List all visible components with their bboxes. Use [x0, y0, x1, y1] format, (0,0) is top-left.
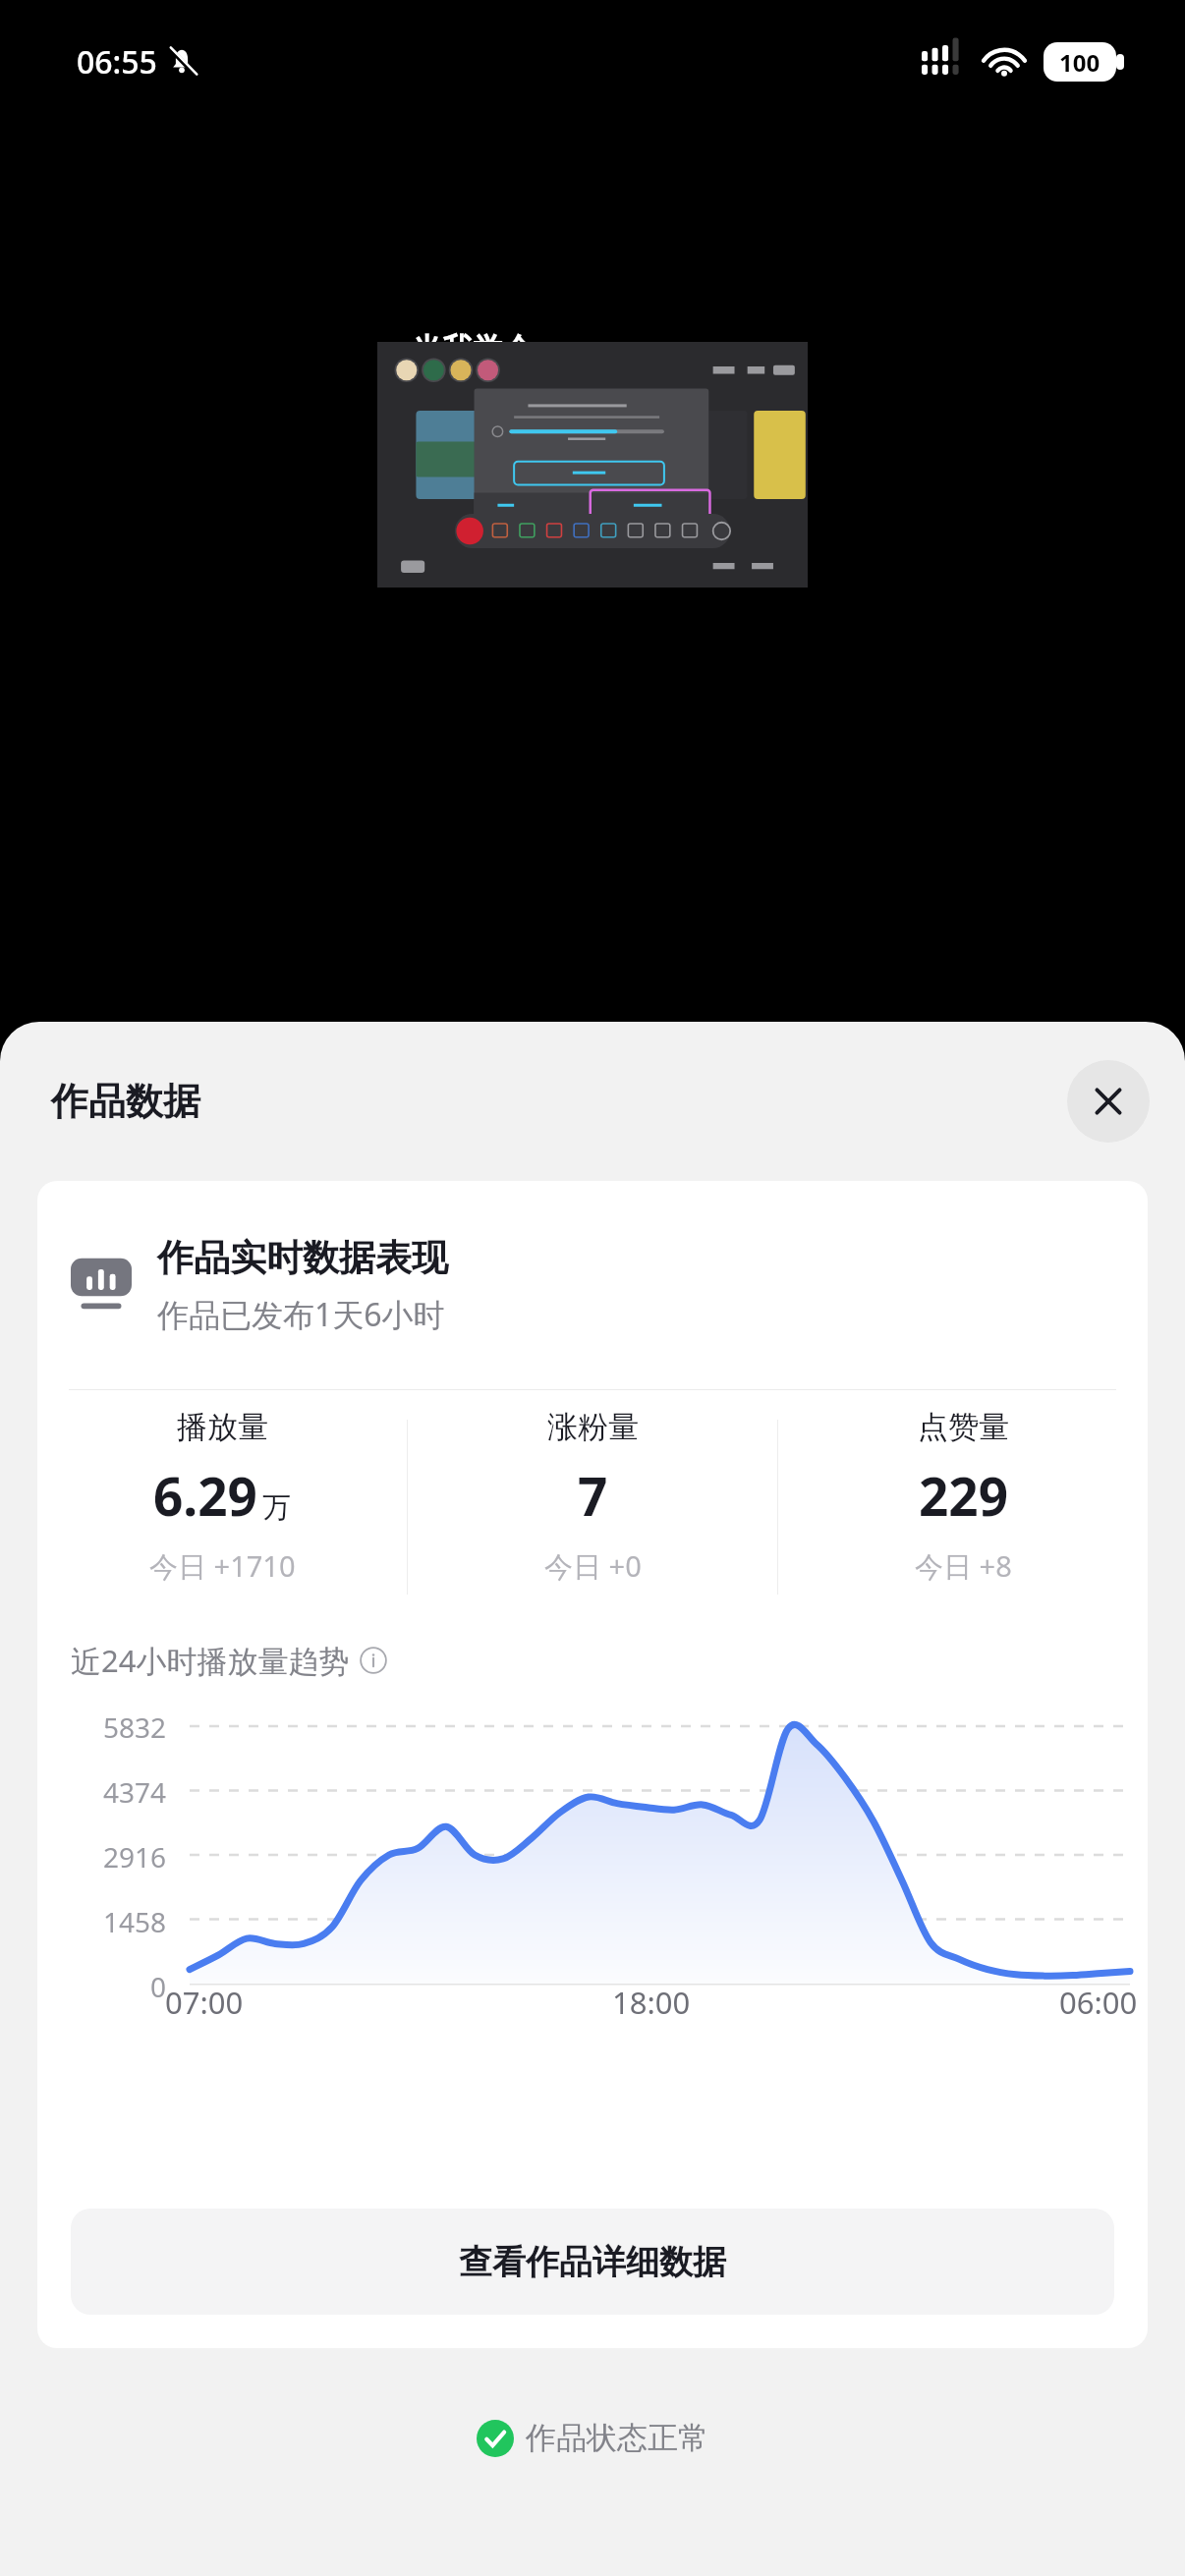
- button[interactable]: 点赞量: [778, 1408, 1148, 1586]
- staticText: 查看作品详细数据: [459, 2241, 726, 2283]
- staticText: 涨粉量: [547, 1408, 639, 1446]
- staticText: 07:00: [165, 1982, 244, 2023]
- button[interactable]: 查看作品详细数据: [71, 2209, 1114, 2315]
- staticText: 作品已发布1天6小时: [157, 1293, 445, 1336]
- staticText: 点赞量: [918, 1408, 1009, 1446]
- staticText: 近24小时播放量趋势: [71, 1640, 350, 1681]
- staticText: 当我学会: [412, 330, 534, 368]
- staticText: 今日 +1710: [149, 1546, 296, 1586]
- staticText: 作品实时数据表现: [157, 1235, 448, 1281]
- staticText: 今日 +0: [544, 1546, 642, 1586]
- staticText: 作品状态正常: [526, 2419, 708, 2457]
- staticText: 今日 +8: [915, 1546, 1012, 1586]
- staticText: 6.29: [153, 1460, 257, 1531]
- staticText: 06:55: [77, 40, 157, 84]
- button[interactable]: 涨粉量: [408, 1408, 777, 1586]
- staticText: 播放量: [177, 1408, 268, 1446]
- staticText: 作品数据: [51, 1078, 200, 1125]
- button[interactable]: 播放量: [37, 1408, 407, 1586]
- staticText: 0: [150, 1968, 167, 2005]
- staticText: 229: [919, 1460, 1008, 1531]
- staticText: 1458: [103, 1903, 167, 1940]
- staticText: 100: [1059, 46, 1100, 79]
- button[interactable]: 关闭: [1067, 1060, 1150, 1143]
- staticText: 走代理后: [412, 421, 534, 460]
- staticText: 06:00: [1059, 1982, 1138, 2023]
- staticText: 让Switch通过电脑: [412, 374, 665, 416]
- staticText: 5832: [103, 1708, 167, 1746]
- staticText: 万: [262, 1489, 291, 1526]
- staticText: 18:00: [612, 1982, 691, 2023]
- staticText: 7: [578, 1460, 608, 1531]
- staticText: 4374: [103, 1773, 167, 1811]
- staticText: 2916: [103, 1838, 167, 1876]
